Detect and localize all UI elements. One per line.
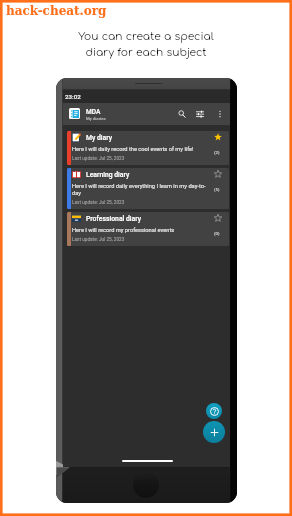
button[interactable]: More options: [213, 107, 227, 121]
staticText: (2): [214, 150, 220, 155]
staticText: My diaries: [86, 116, 106, 121]
staticText: Last update: Jul 25, 2023: [72, 156, 125, 162]
staticText: (5): [214, 187, 220, 192]
staticText: Learning diary: [86, 171, 130, 179]
button[interactable]: Favorite: [213, 132, 223, 142]
staticText: Here I will daily record the cool events…: [72, 146, 194, 153]
button[interactable]: Favorite: [213, 169, 223, 179]
button[interactable]: Add diary: [203, 421, 225, 443]
button[interactable]: Learning diary: [67, 168, 229, 209]
staticText: My diary: [86, 134, 112, 142]
button[interactable]: Search: [175, 107, 189, 121]
button[interactable]: Filter: [193, 107, 207, 121]
staticText: hack-cheat.org: [6, 4, 107, 18]
staticText: Here I will record daily everything I le…: [72, 183, 209, 197]
staticText: (0): [214, 231, 220, 236]
staticText: 23:02: [65, 93, 81, 100]
button[interactable]: Favorite: [213, 213, 223, 223]
button[interactable]: Professional diary: [67, 212, 229, 246]
staticText: Last update: Jul 25, 2023: [72, 200, 125, 206]
staticText: Professional diary: [86, 215, 142, 223]
staticText: MDA: [86, 108, 101, 116]
staticText: Last update: Jul 25, 2023: [72, 237, 125, 243]
button[interactable]: My diary: [67, 131, 229, 165]
button[interactable]: Help: [206, 403, 222, 419]
staticText: Here I will record my professional event…: [72, 227, 175, 234]
staticText: You can create a special diary for each …: [0, 31, 292, 59]
